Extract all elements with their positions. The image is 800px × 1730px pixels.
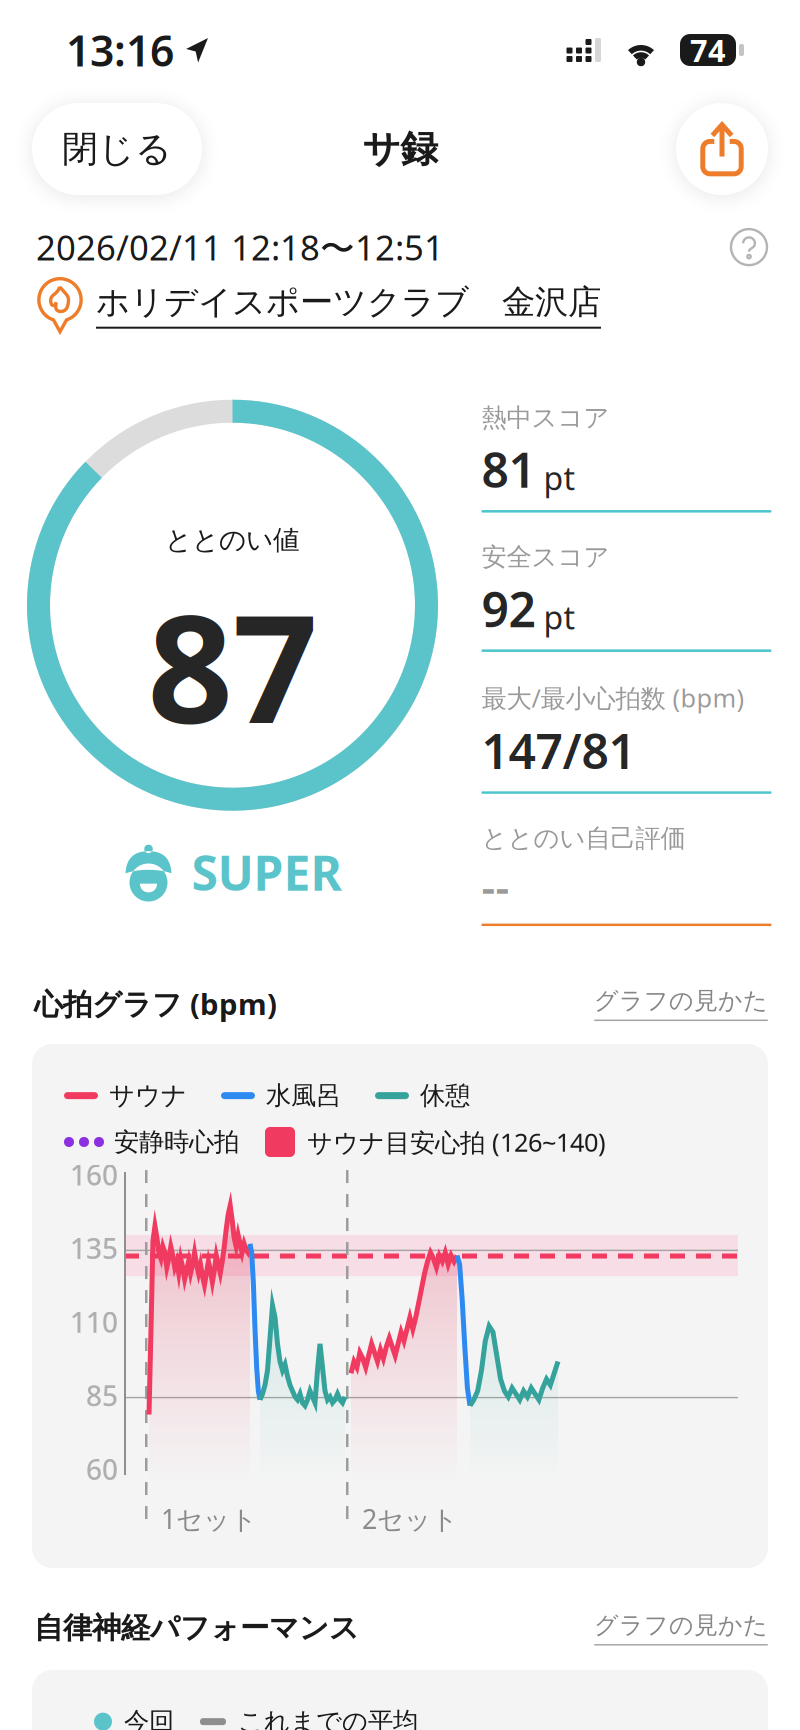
staticText: 安静時心拍 — [114, 1126, 239, 1157]
button[interactable]: ヘルプ — [730, 228, 768, 266]
staticText: サ録 — [362, 126, 437, 172]
button[interactable]: グラフの見かた — [594, 1611, 768, 1646]
staticText: サウナ — [109, 1080, 187, 1111]
staticText: 74 — [690, 30, 726, 70]
staticText: グラフの見かた — [594, 1611, 768, 1640]
staticText: 心拍グラフ (bpm) — [34, 984, 277, 1023]
staticText: 熱中スコア — [481, 402, 609, 433]
staticText: 147/81 — [481, 719, 635, 782]
staticText: 2026/02/11 12:18〜12:51 — [36, 224, 444, 270]
staticText: これまでの平均 — [238, 1706, 418, 1730]
staticText: 閉じる — [62, 127, 172, 171]
staticText: 92 — [481, 577, 535, 640]
staticText: 60 — [86, 1450, 118, 1488]
staticText: 85 — [86, 1377, 118, 1414]
staticText: 今回 — [124, 1706, 174, 1730]
staticText: 13:16 — [66, 22, 174, 78]
staticText: 休憩 — [420, 1080, 470, 1111]
staticText: 2セット — [362, 1501, 458, 1536]
staticText: 1セット — [161, 1501, 257, 1536]
staticText: グラフの見かた — [594, 986, 768, 1016]
staticText: 安全スコア — [481, 542, 609, 573]
staticText: ととのい自己評価 — [481, 823, 685, 854]
staticText: -- — [481, 858, 509, 915]
button[interactable]: グラフの見かた — [594, 986, 768, 1021]
staticText: 87 — [147, 566, 317, 765]
staticText: 81 — [481, 437, 535, 501]
staticText: 最大/最小心拍数 (bpm) — [481, 681, 744, 714]
button[interactable]: 共有 — [676, 103, 768, 195]
staticText: ととのい値 — [165, 524, 300, 556]
staticText: サウナ目安心拍 (126~140) — [307, 1125, 606, 1159]
staticText: 自律神経パフォーマンス — [34, 1610, 359, 1646]
staticText: SUPER — [191, 840, 341, 904]
staticText: ホリデイスポーツクラブ 金沢店 — [96, 282, 601, 323]
staticText: 110 — [70, 1303, 118, 1340]
staticText: 水風呂 — [266, 1080, 341, 1111]
button[interactable]: 閉じる — [32, 103, 202, 195]
staticText: pt — [543, 457, 575, 499]
staticText: pt — [543, 596, 575, 638]
staticText: 160 — [70, 1156, 118, 1193]
staticText: 135 — [70, 1230, 118, 1267]
